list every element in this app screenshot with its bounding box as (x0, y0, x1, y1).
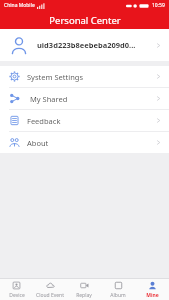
other: Replay (80, 281, 89, 290)
button[interactable]: My Shared (0, 88, 169, 109)
other: Album (114, 281, 123, 290)
button[interactable]: uid3d223b8eebeba209d0... (0, 29, 169, 61)
other: Mine (148, 281, 157, 290)
button[interactable]: Replay (67, 279, 101, 300)
button[interactable]: Feedback (0, 110, 169, 131)
button[interactable]: Mine (135, 279, 169, 300)
staticText: Album (110, 292, 126, 299)
button[interactable]: Album (101, 279, 135, 300)
staticText: System Settings (27, 72, 155, 82)
button[interactable]: System Settings (0, 66, 169, 87)
button[interactable]: Cloud Event (33, 279, 67, 300)
staticText: Feedback (27, 116, 155, 126)
staticText: Device (9, 292, 25, 299)
staticText: Replay (76, 292, 92, 299)
staticText: My Shared (30, 94, 155, 104)
staticText: About (27, 138, 155, 148)
staticText: 10:59 (152, 2, 165, 9)
staticText: China Mobile (4, 2, 35, 9)
other: Cloud Event (46, 281, 55, 290)
other: Device (12, 281, 21, 290)
staticText: Mine (146, 292, 159, 299)
staticText: Cloud Event (36, 292, 64, 299)
button[interactable]: About (0, 132, 169, 153)
button[interactable]: Device (0, 279, 33, 300)
staticText: Personal Center (49, 14, 121, 27)
staticText: uid3d223b8eebeba209d0... (37, 40, 155, 50)
